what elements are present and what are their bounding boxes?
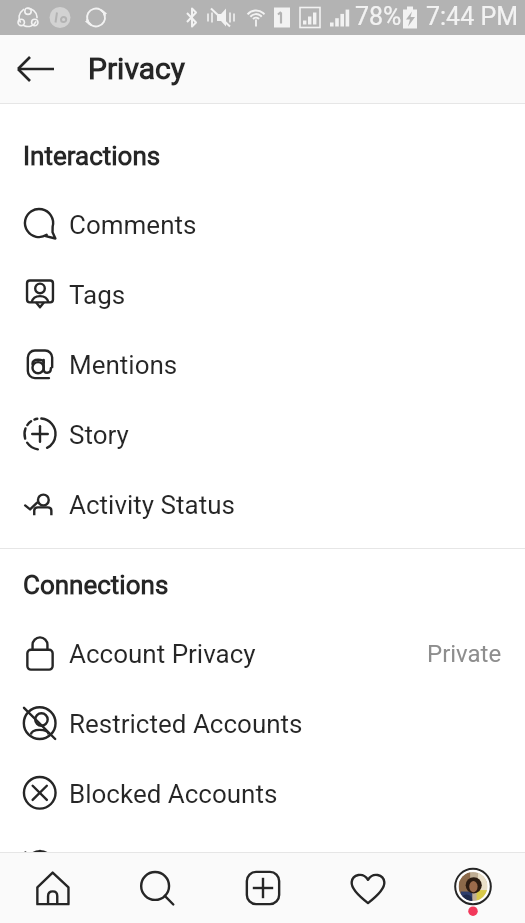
- button[interactable]: Back: [6, 39, 66, 99]
- staticText: Private: [427, 640, 502, 668]
- staticText: Tags: [69, 280, 126, 310]
- staticText: Interactions: [23, 141, 161, 171]
- button[interactable]: Comments: [0, 189, 525, 259]
- button[interactable]: Activity: [315, 853, 420, 923]
- staticText: Privacy: [88, 51, 185, 86]
- button[interactable]: Tags: [0, 259, 525, 329]
- button[interactable]: Account Privacy: [0, 618, 525, 688]
- staticText: Blocked Accounts: [69, 779, 278, 809]
- staticText: Mentions: [69, 350, 178, 380]
- staticText: Account Privacy: [69, 639, 256, 669]
- button[interactable]: Story: [0, 399, 525, 469]
- button[interactable]: Home: [0, 853, 105, 923]
- staticText: Restricted Accounts: [69, 709, 303, 739]
- button[interactable]: Profile: [420, 853, 525, 923]
- staticText: Activity Status: [69, 490, 235, 520]
- button[interactable]: Blocked Accounts: [0, 758, 525, 828]
- staticText: Connections: [23, 570, 169, 600]
- staticText: Comments: [69, 210, 197, 240]
- button[interactable]: Activity Status: [0, 469, 525, 539]
- button[interactable]: Mentions: [0, 329, 525, 399]
- staticText: 78%: [355, 2, 402, 31]
- button[interactable]: New post: [210, 853, 315, 923]
- staticText: 7:44 PM: [426, 2, 519, 31]
- staticText: Story: [69, 420, 129, 450]
- button[interactable]: Restricted Accounts: [0, 688, 525, 758]
- button[interactable]: Search: [105, 853, 210, 923]
- button[interactable]: Muted Accounts: [0, 828, 525, 852]
